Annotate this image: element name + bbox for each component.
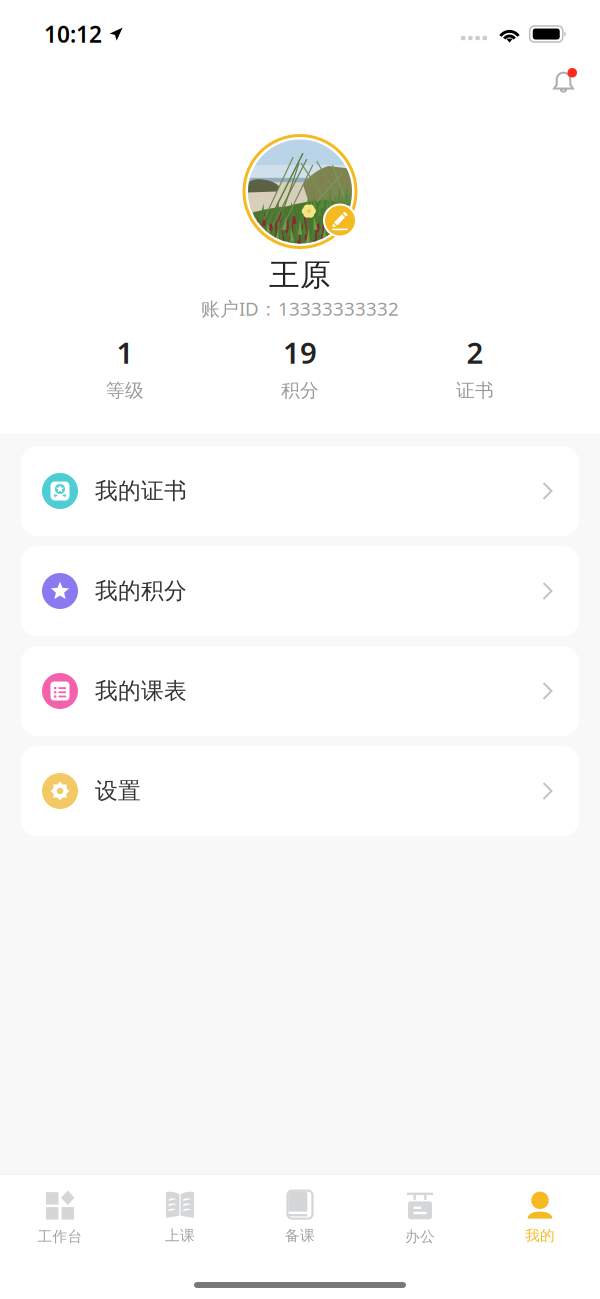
staticText: 办公 — [405, 1228, 435, 1246]
staticText: 2 — [466, 333, 483, 372]
staticText: 积分 — [281, 379, 319, 402]
button[interactable]: 我的积分 — [21, 546, 579, 636]
staticText: 我的积分 — [95, 577, 187, 605]
staticText: 备课 — [285, 1227, 315, 1245]
staticText: 工作台 — [37, 1228, 82, 1246]
staticText: 1 — [116, 333, 133, 372]
button[interactable]: 工作台 — [0, 1175, 120, 1245]
button[interactable]: 我的课表 — [21, 646, 579, 736]
button[interactable]: 我的 — [480, 1175, 600, 1245]
button[interactable]: 备课 — [240, 1175, 360, 1245]
staticText: 王原 — [269, 256, 331, 294]
button[interactable]: 我的证书 — [21, 446, 579, 536]
staticText: 我的 — [525, 1227, 555, 1245]
staticText: 19 — [283, 333, 317, 372]
staticText: 账户ID：13333333332 — [201, 296, 399, 321]
staticText: 10:12 — [44, 19, 102, 49]
staticText: 设置 — [95, 777, 141, 805]
staticText: 等级 — [106, 379, 144, 402]
staticText: 我的证书 — [95, 477, 187, 505]
staticText: 我的课表 — [95, 677, 187, 705]
staticText: 上课 — [165, 1227, 195, 1245]
button[interactable]: Edit profile photo — [323, 203, 357, 237]
button[interactable]: 设置 — [21, 746, 579, 836]
staticText: 证书 — [456, 379, 494, 402]
button[interactable]: 办公 — [360, 1175, 480, 1245]
button[interactable]: Notifications — [551, 63, 600, 98]
button[interactable]: 上课 — [120, 1175, 240, 1245]
